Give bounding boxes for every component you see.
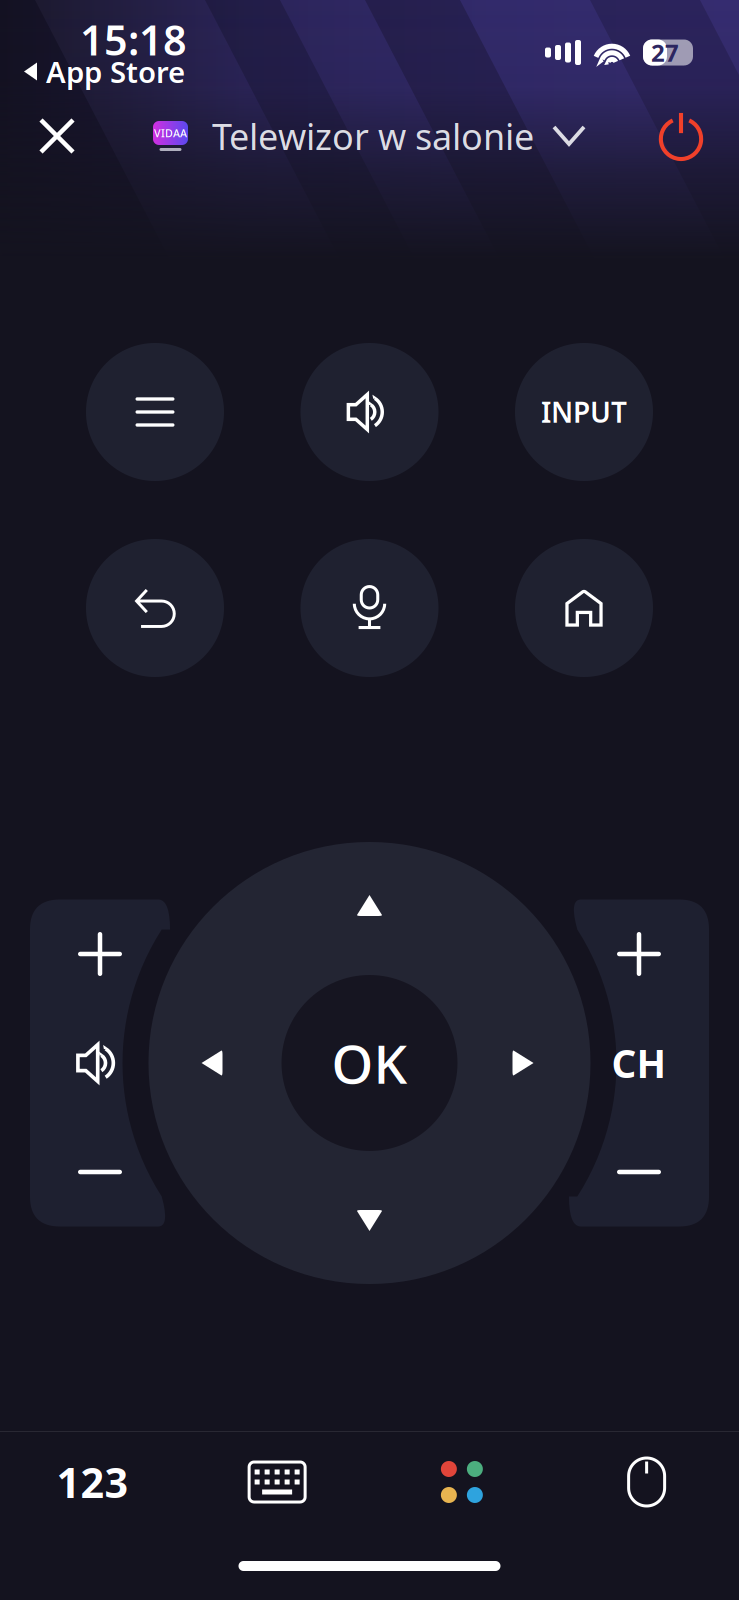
staticText: 123	[56, 1455, 128, 1509]
staticText: INPUT	[541, 393, 627, 431]
button[interactable]: Menu	[86, 343, 224, 481]
staticText: 15:18	[80, 12, 187, 67]
button[interactable]: Back	[86, 539, 224, 677]
button[interactable]: Input	[515, 343, 653, 481]
staticText: 27	[651, 37, 679, 68]
staticText: OK	[331, 1028, 407, 1098]
button[interactable]: Mute	[300, 343, 438, 481]
button[interactable]: Power	[641, 98, 721, 174]
button[interactable]: Channel down	[569, 1117, 709, 1226]
button[interactable]: Channel	[569, 1008, 709, 1117]
button[interactable]: Voice	[300, 539, 438, 677]
button[interactable]: Color buttons	[369, 1432, 554, 1532]
staticText: Telewizor w salonie	[212, 112, 534, 160]
button[interactable]: VIDAA	[153, 98, 586, 174]
button[interactable]: 123	[0, 1432, 185, 1532]
button[interactable]: Close	[18, 98, 96, 174]
button[interactable]: Volume	[30, 1008, 170, 1117]
button[interactable]: Touchpad	[554, 1432, 739, 1532]
button[interactable]: Volume up	[30, 899, 170, 1008]
button[interactable]: Keyboard	[185, 1432, 370, 1532]
button[interactable]: OK	[148, 842, 590, 1284]
button[interactable]: Volume down	[30, 1117, 170, 1226]
button[interactable]: Channel up	[569, 899, 709, 1008]
staticText: CH	[611, 1037, 666, 1089]
button[interactable]: Home	[515, 539, 653, 677]
staticText: VIDAA	[154, 126, 187, 140]
staticText: App Store	[46, 52, 185, 91]
